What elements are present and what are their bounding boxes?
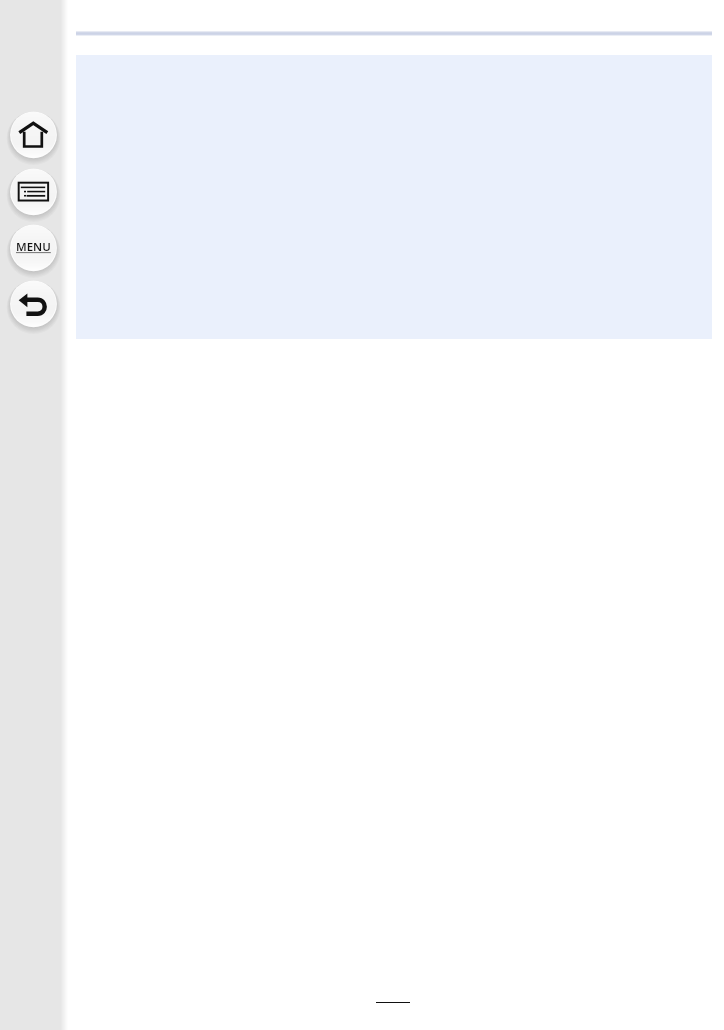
staticText: MENU: [16, 239, 51, 255]
button[interactable]: MENU: [6, 220, 61, 275]
button[interactable]: Home: [6, 107, 61, 162]
button[interactable]: Back: [6, 276, 61, 331]
button[interactable]: Index: [6, 164, 61, 219]
